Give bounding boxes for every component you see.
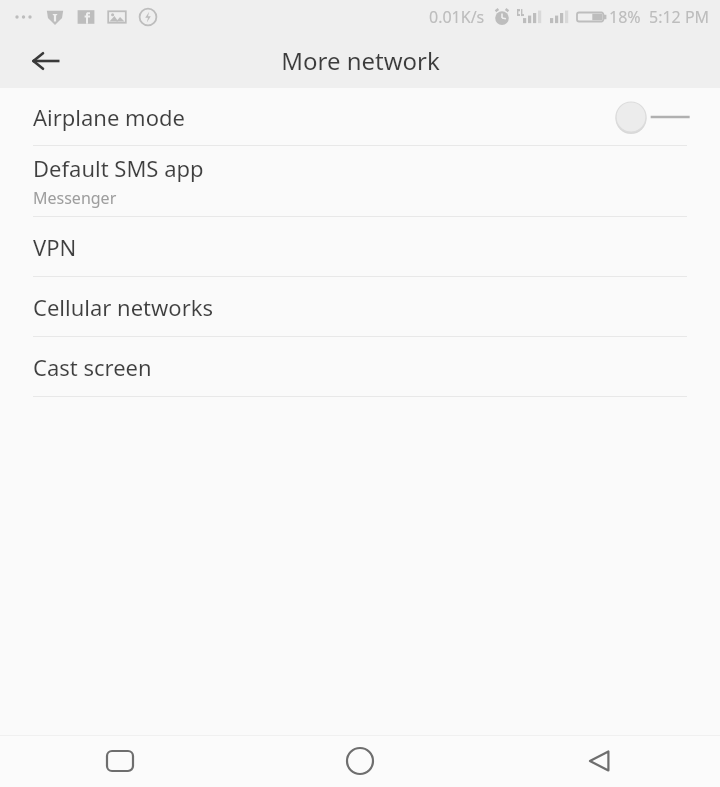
button[interactable]: Back (18, 34, 74, 88)
staticText: More network (281, 44, 440, 77)
button[interactable]: Cellular networks (0, 277, 720, 336)
staticText: 5:12 PM (649, 6, 710, 28)
button[interactable]: Recents (0, 735, 240, 787)
button[interactable]: Home (240, 735, 480, 787)
button[interactable]: Airplane mode (0, 88, 720, 145)
button[interactable]: VPN (0, 217, 720, 276)
staticText: Cast screen (33, 352, 152, 382)
staticText: 18% (609, 6, 641, 28)
staticText: Cellular networks (33, 292, 214, 322)
button[interactable]: Back (480, 735, 720, 787)
button[interactable]: Cast screen (0, 337, 720, 396)
staticText: Airplane mode (33, 102, 185, 132)
button[interactable]: Default SMS app (0, 146, 720, 216)
staticText: VPN (33, 232, 77, 262)
staticText: Default SMS app (33, 153, 204, 183)
button[interactable]: Airplane mode toggle (614, 97, 692, 137)
staticText: Messenger (33, 187, 117, 209)
staticText: 0.01K/s (429, 6, 485, 28)
